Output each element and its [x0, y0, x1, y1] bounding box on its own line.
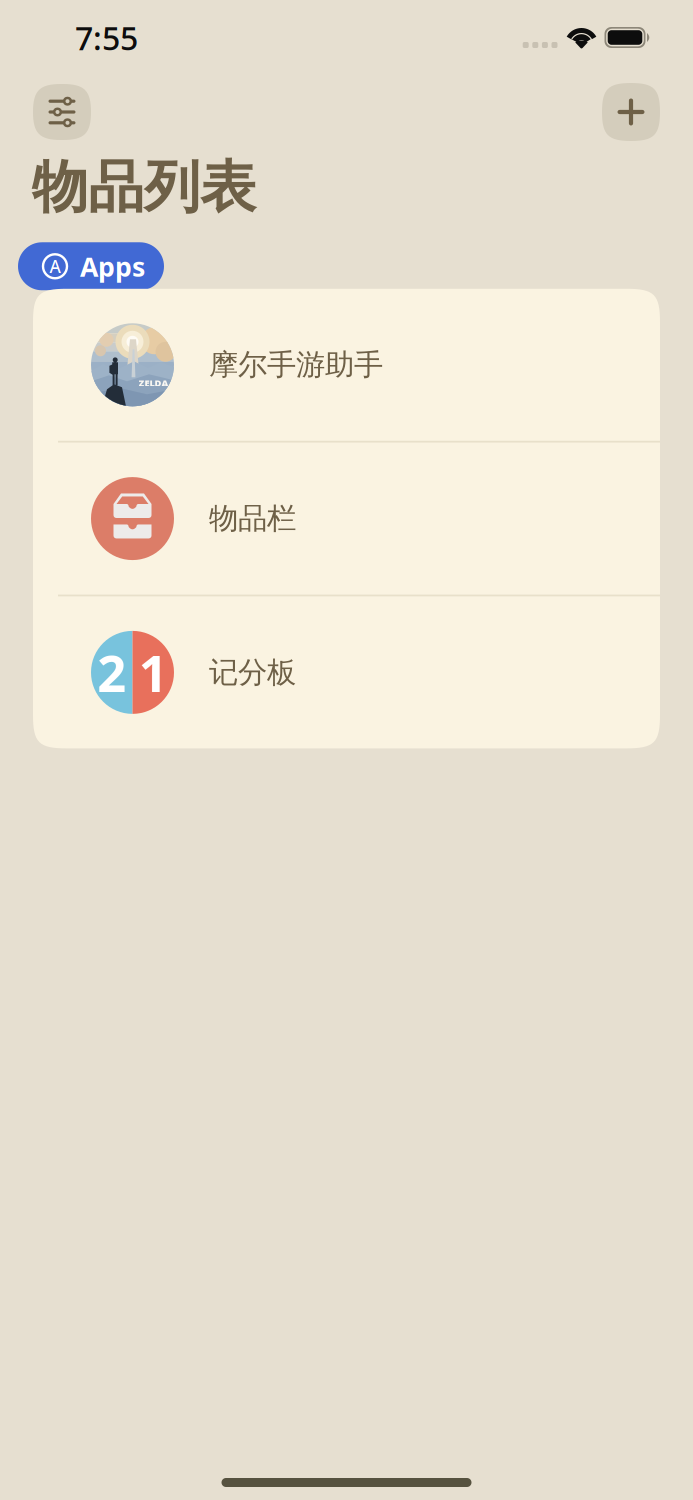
- staticText: 摩尔手游助手: [209, 347, 383, 383]
- staticText: ZELDA: [138, 377, 168, 389]
- button[interactable]: Filters: [33, 84, 91, 140]
- staticText: A: [49, 255, 60, 278]
- button[interactable]: ZELDA: [33, 289, 660, 441]
- staticText: 物品列表: [32, 153, 256, 222]
- button[interactable]: A: [18, 242, 164, 290]
- button[interactable]: Add: [602, 83, 660, 141]
- button[interactable]: 2: [33, 596, 660, 748]
- staticText: 记分板: [209, 654, 296, 690]
- staticText: 7:55: [75, 16, 138, 59]
- staticText: 1: [139, 639, 168, 706]
- staticText: 物品栏: [209, 501, 296, 537]
- staticText: Apps: [80, 249, 145, 284]
- staticText: 2: [97, 639, 126, 706]
- button[interactable]: 物品栏: [33, 443, 660, 595]
